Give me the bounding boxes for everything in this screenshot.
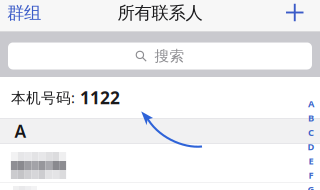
staticText: F bbox=[308, 169, 313, 181]
staticText: E bbox=[308, 155, 313, 167]
staticText: G bbox=[307, 183, 314, 190]
button[interactable]: Contact bbox=[0, 183, 320, 190]
button[interactable]: Section index bbox=[305, 97, 317, 190]
button[interactable]: 群组 bbox=[0, 0, 49, 26]
button[interactable]: Add contact bbox=[278, 0, 320, 25]
button[interactable]: Contact bbox=[0, 144, 320, 182]
staticText: B bbox=[308, 112, 314, 124]
staticText: A bbox=[14, 119, 26, 142]
staticText: A bbox=[308, 97, 314, 110]
staticText: 群组 bbox=[7, 2, 41, 24]
staticText: 搜索 bbox=[146, 47, 184, 65]
staticText: 本机号码: bbox=[11, 88, 75, 107]
staticText: 所有联系人 bbox=[117, 2, 202, 24]
staticText: C bbox=[308, 126, 314, 138]
staticText: D bbox=[307, 140, 314, 153]
button[interactable]: 本机号码: bbox=[0, 77, 320, 118]
button[interactable]: 搜索 bbox=[8, 42, 312, 69]
staticText: 1122 bbox=[80, 86, 120, 109]
